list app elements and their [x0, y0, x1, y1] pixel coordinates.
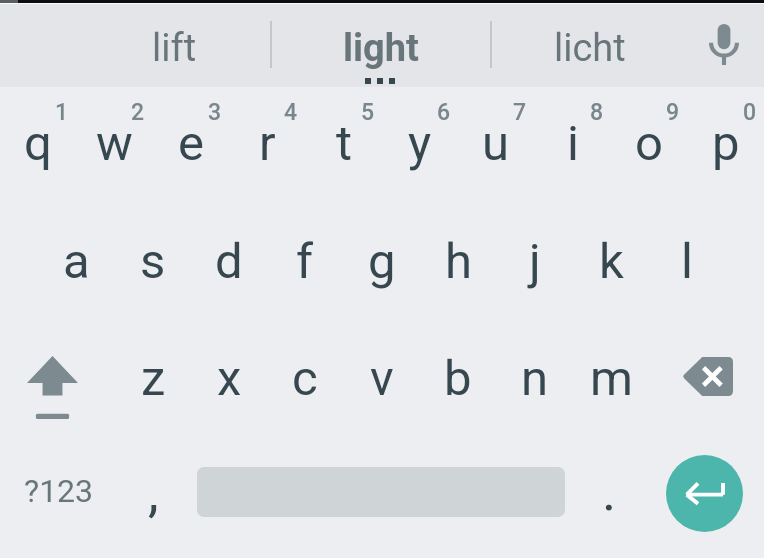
staticText: l [681, 233, 693, 290]
staticText: 6 [437, 99, 451, 126]
button[interactable]: v [344, 323, 420, 441]
staticText: 2 [131, 99, 145, 126]
button[interactable]: ?123 [0, 441, 114, 558]
button[interactable]: j [497, 206, 573, 324]
staticText: f [296, 233, 314, 290]
button[interactable]: Voice input [688, 4, 764, 87]
staticText: . [602, 460, 617, 523]
button[interactable]: k [573, 206, 649, 324]
staticText: h [445, 233, 472, 290]
button[interactable]: y [382, 88, 458, 206]
staticText: d [215, 233, 243, 290]
staticText: u [482, 115, 510, 172]
staticText: m [590, 350, 633, 407]
button[interactable]: w [76, 88, 152, 206]
staticText: z [141, 350, 166, 407]
button[interactable]: licht [491, 4, 698, 87]
button[interactable]: Backspace [649, 323, 764, 441]
button[interactable]: Space [190, 441, 572, 558]
button[interactable]: r [229, 88, 305, 206]
button[interactable]: m [573, 323, 649, 441]
staticText: 1 [55, 99, 69, 126]
staticText: g [368, 233, 396, 290]
staticText: s [140, 233, 166, 290]
staticText: a [63, 233, 90, 290]
button[interactable]: d [191, 206, 267, 324]
staticText: j [529, 233, 541, 290]
staticText: 7 [513, 99, 527, 126]
button[interactable]: s [115, 206, 191, 324]
button[interactable]: q [0, 88, 76, 206]
staticText: 3 [208, 99, 222, 126]
staticText: licht [554, 26, 626, 71]
staticText: i [567, 115, 579, 172]
staticText: k [599, 233, 624, 290]
staticText: 9 [666, 99, 680, 126]
staticText: o [635, 115, 663, 172]
staticText: e [178, 115, 204, 172]
button[interactable]: l [649, 206, 725, 324]
button[interactable]: Enter [648, 441, 764, 558]
button[interactable]: z [115, 323, 191, 441]
button[interactable]: o [611, 88, 687, 206]
staticText: 8 [590, 99, 604, 126]
staticText: light [343, 26, 419, 71]
button[interactable]: n [497, 323, 573, 441]
staticText: r [259, 115, 276, 172]
staticText: p [712, 115, 740, 172]
button[interactable]: a [38, 206, 114, 324]
staticText: , [148, 461, 159, 524]
staticText: q [24, 115, 52, 172]
staticText: 0 [743, 99, 757, 126]
staticText: y [408, 115, 432, 172]
button[interactable]: light [271, 4, 490, 87]
button[interactable]: , [114, 441, 190, 558]
staticText: w [96, 115, 133, 172]
staticText: c [292, 350, 318, 407]
button[interactable]: b [420, 323, 496, 441]
button[interactable]: h [420, 206, 496, 324]
staticText: lift [152, 26, 197, 71]
staticText: 5 [361, 99, 375, 126]
button[interactable]: f [267, 206, 343, 324]
button[interactable]: lift [64, 4, 271, 87]
button[interactable]: t [306, 88, 382, 206]
button[interactable]: Shift [0, 323, 114, 441]
button[interactable]: x [191, 323, 267, 441]
button[interactable]: c [267, 323, 343, 441]
button[interactable]: e [153, 88, 229, 206]
button[interactable]: i [535, 88, 611, 206]
staticText: 4 [284, 99, 298, 126]
button[interactable]: u [458, 88, 534, 206]
staticText: t [336, 115, 353, 172]
staticText: n [521, 350, 549, 407]
staticText: x [217, 350, 242, 407]
staticText: ?123 [24, 472, 94, 510]
button[interactable]: . [572, 441, 648, 558]
button[interactable]: p [688, 88, 764, 206]
button[interactable]: g [344, 206, 420, 324]
staticText: b [444, 350, 472, 407]
staticText: v [370, 350, 394, 407]
